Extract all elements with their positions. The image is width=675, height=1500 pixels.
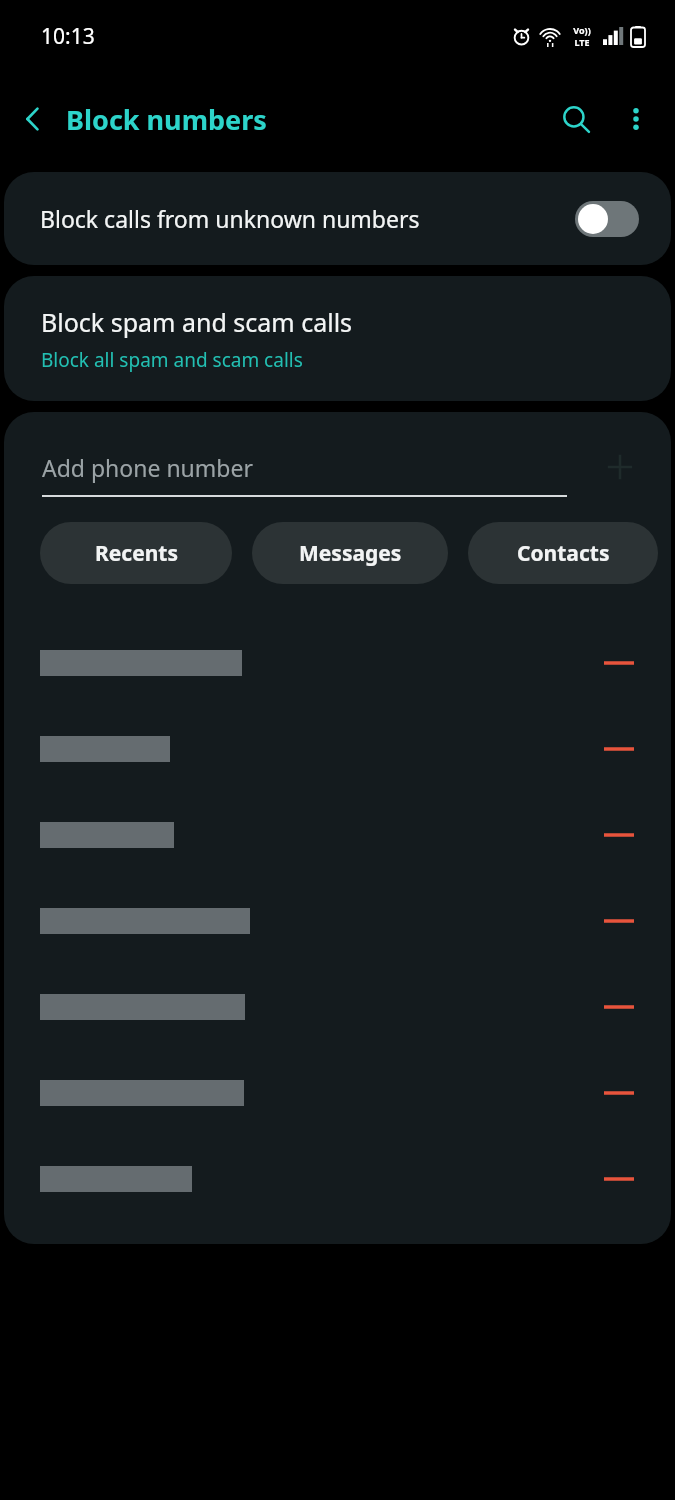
staticText: Block all spam and scam calls — [41, 347, 303, 373]
button[interactable]: Remove blocked number — [597, 1071, 641, 1115]
staticText: Vo)) — [573, 24, 591, 36]
staticText: Block numbers — [66, 101, 267, 138]
staticText: Add phone number — [42, 452, 253, 483]
button[interactable]: Block calls from unknown numbers toggle — [575, 201, 639, 237]
button[interactable]: Add phone number — [42, 437, 567, 497]
button[interactable]: Navigate up — [0, 86, 66, 152]
staticText: 10:13 — [41, 22, 95, 51]
staticText: Recents — [95, 539, 178, 568]
button[interactable]: Block calls from unknown numbers — [4, 172, 671, 265]
button[interactable]: Messages — [252, 522, 448, 584]
button[interactable]: Contacts — [468, 522, 658, 584]
button[interactable]: Remove blocked number — [4, 792, 671, 878]
staticText: Block calls from unknown numbers — [40, 203, 575, 234]
staticText: Contacts — [517, 539, 610, 568]
button[interactable]: Remove blocked number — [597, 727, 641, 771]
staticText: Messages — [299, 539, 402, 568]
button[interactable]: Remove blocked number — [4, 878, 671, 964]
button[interactable]: More options — [607, 90, 665, 148]
staticText: LTE — [574, 36, 590, 48]
button[interactable]: Remove blocked number — [597, 1157, 641, 1201]
button[interactable]: Remove blocked number — [597, 985, 641, 1029]
button[interactable]: Recents — [40, 522, 232, 584]
button[interactable]: Remove blocked number — [4, 1136, 671, 1222]
staticText: Block spam and scam calls — [41, 305, 353, 339]
button[interactable]: Remove blocked number — [597, 641, 641, 685]
button[interactable]: Remove blocked number — [4, 706, 671, 792]
button[interactable]: Remove blocked number — [4, 1050, 671, 1136]
button[interactable]: Remove blocked number — [4, 620, 671, 706]
button[interactable]: Block spam and scam calls — [4, 276, 671, 401]
button[interactable]: Remove blocked number — [597, 899, 641, 943]
button[interactable]: Remove blocked number — [4, 964, 671, 1050]
button[interactable]: Remove blocked number — [597, 813, 641, 857]
button[interactable]: Search — [545, 88, 607, 150]
